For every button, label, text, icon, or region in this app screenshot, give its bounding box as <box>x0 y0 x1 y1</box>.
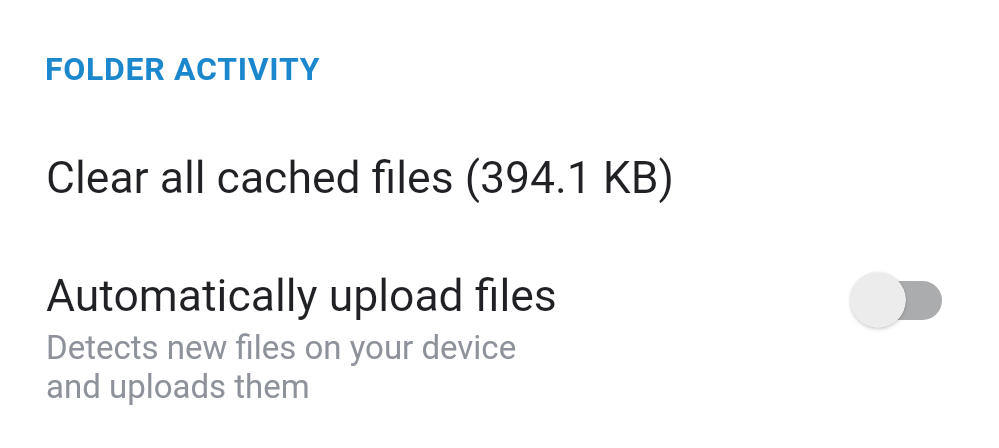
staticText: Clear all cached files (394.1 KB) <box>46 152 674 204</box>
staticText: Automatically upload files <box>46 270 557 322</box>
staticText: Detects new files on your device and upl… <box>46 328 517 406</box>
button[interactable]: Automatically upload files <box>0 248 999 418</box>
button[interactable]: Clear all cached files (394.1 KB) <box>0 130 999 225</box>
button[interactable]: Automatically upload files, off <box>850 271 942 329</box>
staticText: FOLDER ACTIVITY <box>45 50 321 88</box>
